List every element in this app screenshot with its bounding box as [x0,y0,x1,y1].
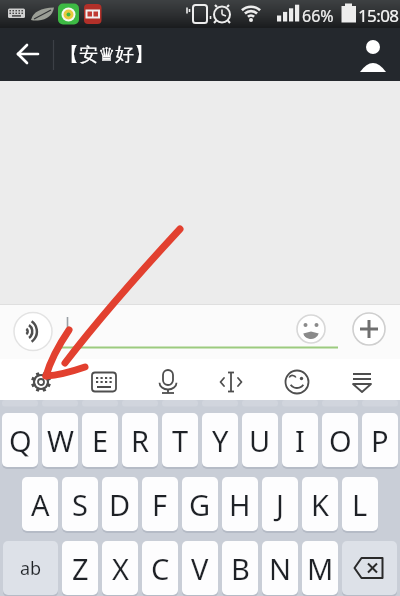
staticText: J [276,485,284,524]
staticText: B [231,549,250,588]
button[interactable] [342,541,397,595]
button[interactable] [8,359,72,400]
button[interactable]: X [102,541,138,595]
button[interactable]: I [282,413,318,467]
button[interactable] [264,359,328,400]
staticText: E [92,421,109,460]
staticText: Y [212,421,229,460]
button[interactable]: ab [3,541,58,595]
button[interactable]: N [262,541,298,595]
button[interactable]: T [162,413,198,467]
staticText: N [269,549,292,588]
button[interactable]: W [42,413,78,467]
staticText: W [47,421,74,460]
staticText: H [229,485,251,524]
staticText: Z [72,549,89,588]
staticText: 15:08 [358,4,399,27]
staticText: C [151,549,170,588]
button[interactable] [136,359,200,400]
staticText: A [31,485,50,524]
button[interactable]: M [302,541,338,595]
button[interactable]: A [22,477,58,531]
button[interactable] [292,312,330,352]
staticText: K [311,485,329,524]
button[interactable] [0,312,55,352]
button[interactable]: E [82,413,118,467]
staticText: D [109,485,131,524]
button[interactable]: Y [202,413,238,467]
button[interactable]: P [362,413,398,467]
staticText: I [295,421,305,460]
button[interactable]: G [182,477,218,531]
button[interactable] [200,359,264,400]
button[interactable] [348,312,388,352]
staticText: U [249,421,271,460]
staticText: V [191,549,209,588]
button[interactable]: D [102,477,138,531]
button[interactable]: V [182,541,218,595]
staticText: ab [20,556,42,581]
button[interactable]: Q [2,413,38,467]
staticText: 66% [302,5,334,27]
staticText: T [172,421,189,460]
staticText: O [329,421,352,460]
button[interactable]: Z [62,541,98,595]
staticText: F [152,485,168,524]
staticText: Q [9,421,32,460]
button[interactable]: R [122,413,158,467]
button[interactable] [55,312,290,352]
staticText: X [112,549,129,588]
button[interactable] [346,28,400,81]
staticText: G [189,485,211,524]
staticText: 【安♛好】 [60,43,154,67]
button[interactable] [328,359,392,400]
button[interactable]: C [142,541,178,595]
button[interactable]: S [62,477,98,531]
staticText: R [131,421,150,460]
button[interactable]: K [302,477,338,531]
button[interactable]: B [222,541,258,595]
button[interactable]: O [322,413,358,467]
button[interactable]: J [262,477,298,531]
button[interactable]: F [142,477,178,531]
button[interactable] [72,359,136,400]
staticText: M [307,549,334,588]
button[interactable]: L [342,477,378,531]
button[interactable]: H [222,477,258,531]
button[interactable]: U [242,413,278,467]
staticText: S [72,485,88,524]
button[interactable] [0,28,50,81]
staticText: P [371,421,389,460]
staticText: L [352,485,368,524]
